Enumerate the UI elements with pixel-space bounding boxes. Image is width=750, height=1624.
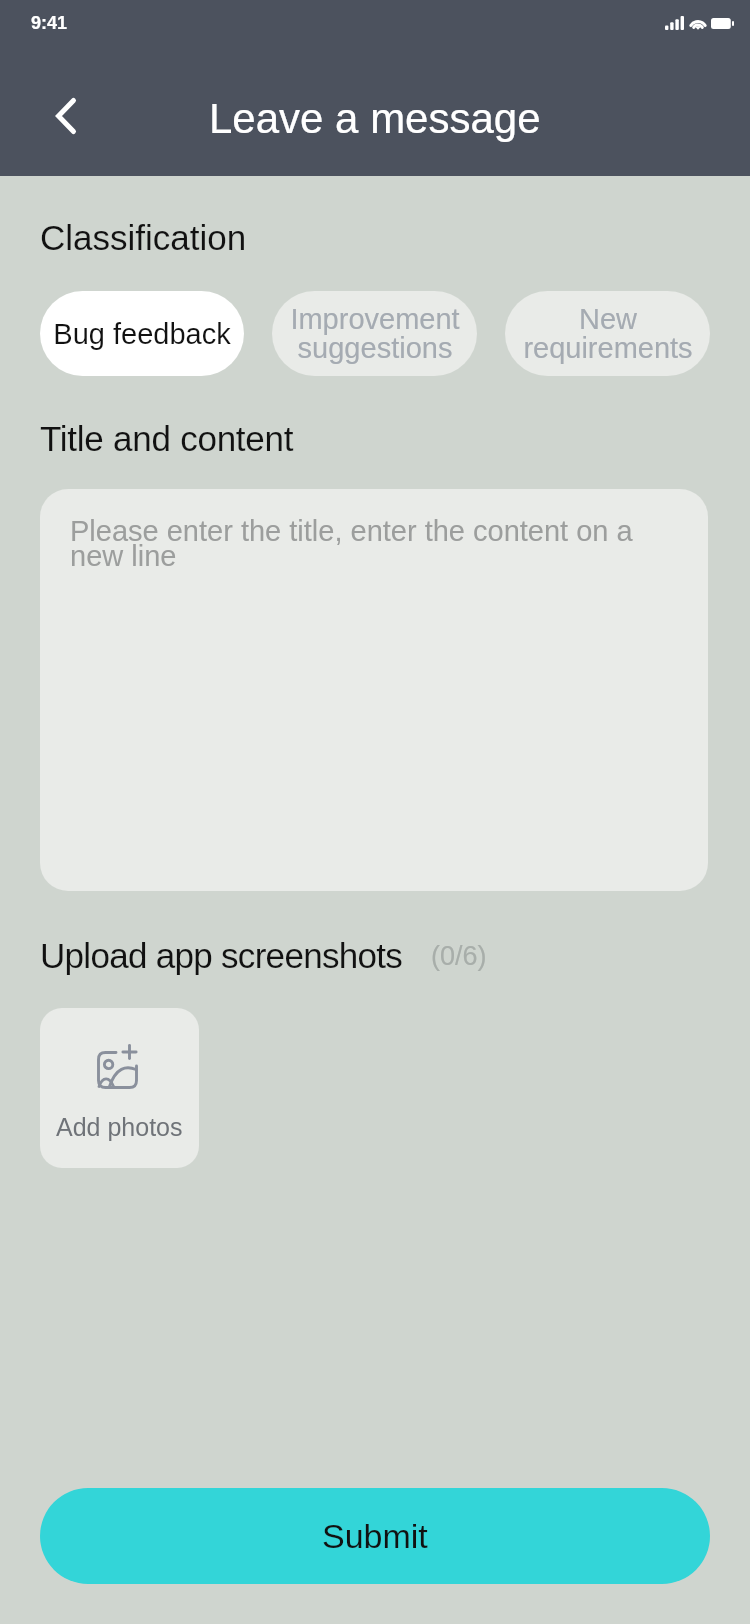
staticText: Bug feedback — [53, 318, 231, 350]
staticText: Leave a message — [209, 95, 541, 142]
button[interactable]: Bug feedback — [40, 291, 244, 376]
button[interactable]: Improvement suggestions — [272, 291, 477, 376]
staticText: Upload app screenshots — [40, 936, 403, 975]
staticText: Submit — [322, 1517, 428, 1555]
button[interactable]: Back — [30, 80, 102, 152]
button[interactable]: New requirements — [505, 291, 710, 376]
staticText: Please enter the title, enter the conten… — [70, 515, 678, 572]
button[interactable]: Add photos — [40, 1008, 199, 1168]
staticText: (0/6) — [431, 941, 487, 971]
staticText: Improvement suggestions — [290, 303, 460, 364]
staticText: Add photos — [56, 1113, 183, 1141]
button[interactable]: Please enter the title, enter the conten… — [40, 489, 708, 891]
staticText: 9:41 — [31, 13, 68, 33]
staticText: New requirements — [523, 303, 693, 364]
button[interactable]: Submit — [40, 1488, 710, 1584]
staticText: Title and content — [40, 419, 294, 458]
staticText: Classification — [40, 218, 247, 257]
